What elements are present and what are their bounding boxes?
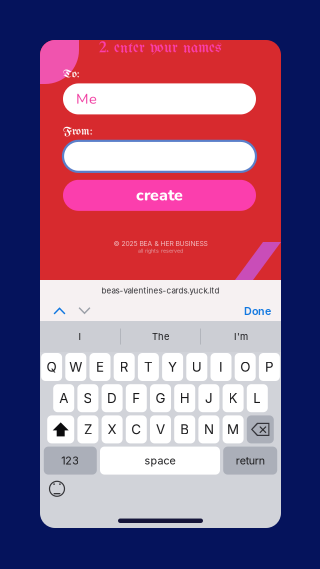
button[interactable]: Q: [41, 353, 62, 381]
button[interactable]: W: [65, 353, 86, 381]
staticText: P: [265, 359, 274, 375]
staticText: I'm: [234, 331, 248, 342]
staticText: From:: [63, 125, 92, 138]
button[interactable]: B: [174, 415, 195, 443]
button[interactable]: H: [174, 384, 195, 412]
button[interactable]: Emoji keyboard: [42, 478, 72, 500]
staticText: O: [240, 359, 250, 375]
button[interactable]: E: [89, 353, 110, 381]
staticText: The: [152, 331, 169, 342]
staticText: F: [132, 390, 140, 406]
staticText: G: [155, 390, 165, 406]
button[interactable]: M: [223, 415, 244, 443]
button[interactable]: T: [138, 353, 159, 381]
button[interactable]: Y: [162, 353, 183, 381]
button[interactable]: V: [150, 415, 171, 443]
staticText: B: [180, 421, 189, 437]
button[interactable]: I: [40, 321, 120, 352]
staticText: all rights reserved: [138, 247, 183, 254]
button[interactable]: O: [235, 353, 256, 381]
staticText: beas-valentines-cards.yuck.ltd: [101, 286, 219, 295]
button[interactable]: Previous field: [47, 301, 72, 321]
staticText: 123: [61, 454, 79, 467]
button[interactable]: Done: [244, 301, 271, 321]
staticText: Z: [84, 421, 92, 437]
button[interactable]: D: [102, 384, 123, 412]
button[interactable]: 123: [44, 447, 97, 475]
button[interactable]: space: [100, 447, 220, 475]
button[interactable]: G: [150, 384, 171, 412]
button[interactable]: U: [186, 353, 207, 381]
staticText: 2. enter your names: [99, 40, 222, 56]
button[interactable]: Z: [77, 415, 98, 443]
staticText: Me: [76, 89, 97, 109]
button[interactable]: P: [259, 353, 280, 381]
staticText: I: [78, 331, 81, 342]
staticText: S: [83, 390, 92, 406]
staticText: W: [69, 359, 82, 375]
button[interactable]: R: [114, 353, 135, 381]
staticText: A: [59, 390, 68, 406]
button[interactable]: N: [198, 415, 219, 443]
staticText: V: [156, 421, 165, 437]
button[interactable]: Next field: [72, 301, 97, 321]
button[interactable]: I: [210, 353, 231, 381]
button[interactable]: X: [102, 415, 123, 443]
staticText: X: [108, 421, 117, 437]
button[interactable]: Delete: [247, 415, 274, 443]
button[interactable]: return: [223, 447, 277, 475]
button[interactable]: K: [223, 384, 244, 412]
staticText: E: [96, 359, 104, 375]
staticText: J: [205, 390, 213, 406]
button[interactable]: J: [198, 384, 219, 412]
staticText: To:: [63, 68, 79, 80]
staticText: M: [227, 421, 239, 437]
staticText: C: [131, 421, 141, 437]
staticText: K: [229, 390, 238, 406]
button[interactable]: create: [63, 180, 256, 211]
button[interactable]: C: [126, 415, 147, 443]
button[interactable]: S: [77, 384, 98, 412]
staticText: R: [120, 359, 129, 375]
staticText: Y: [168, 359, 177, 375]
button[interactable]: The: [121, 321, 200, 352]
staticText: return: [236, 454, 265, 467]
staticText: N: [204, 421, 214, 437]
staticText: space: [144, 454, 175, 467]
staticText: U: [192, 359, 202, 375]
staticText: Done: [244, 304, 271, 317]
staticText: D: [107, 390, 117, 406]
staticText: create: [136, 184, 183, 206]
staticText: © 2025 BEA & HER BUSINESS: [113, 239, 207, 248]
button[interactable]: A: [53, 384, 74, 412]
staticText: L: [253, 390, 261, 406]
staticText: Q: [47, 359, 57, 375]
button[interactable]: I'm: [201, 321, 281, 352]
staticText: H: [180, 390, 190, 406]
button[interactable]: L: [247, 384, 268, 412]
staticText: I: [219, 359, 223, 375]
staticText: T: [144, 359, 153, 375]
button[interactable]: F: [126, 384, 147, 412]
button[interactable]: Shift: [47, 415, 74, 443]
